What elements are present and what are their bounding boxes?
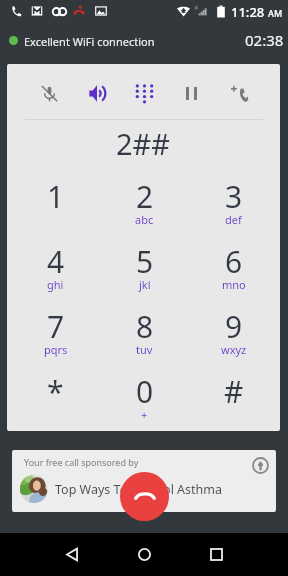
button[interactable]: Dialpad <box>122 76 166 110</box>
button[interactable]: 9 <box>189 306 278 371</box>
staticText: jkl <box>139 277 151 292</box>
button[interactable]: 6 <box>189 241 278 306</box>
staticText: + <box>141 407 148 422</box>
staticText: pqrs <box>44 342 68 357</box>
button[interactable]: Recents <box>194 533 238 576</box>
button[interactable]: 1 <box>11 176 100 241</box>
button[interactable]: 5 <box>100 241 189 306</box>
staticText: 2 <box>136 176 154 217</box>
button[interactable]: Speaker <box>75 76 119 110</box>
staticText: 6 <box>225 241 243 282</box>
staticText: mno <box>222 277 246 292</box>
staticText: 1 <box>47 176 65 217</box>
button[interactable]: 8 <box>100 306 189 371</box>
staticText: abc <box>135 212 154 227</box>
staticText: tuv <box>136 342 153 357</box>
staticText: 4 <box>47 241 65 282</box>
staticText: wxyz <box>221 342 247 357</box>
staticText: * <box>47 371 64 412</box>
staticText: 5 <box>136 241 154 282</box>
staticText: 0 <box>136 371 154 412</box>
button[interactable]: 4 <box>11 241 100 306</box>
button[interactable]: 2 <box>100 176 189 241</box>
button[interactable]: * <box>11 371 100 431</box>
staticText: 11:28 <box>231 3 265 21</box>
staticText: ghi <box>47 277 64 292</box>
staticText: AM <box>268 7 283 19</box>
button[interactable]: # <box>189 371 278 431</box>
staticText: 02:38 <box>245 30 284 50</box>
button[interactable]: 0 <box>100 371 189 431</box>
staticText: 7 <box>47 306 65 347</box>
button[interactable]: Add call <box>217 76 261 110</box>
button[interactable]: Home <box>122 533 166 576</box>
staticText: 8 <box>136 306 154 347</box>
button[interactable]: 7 <box>11 306 100 371</box>
staticText: Top Ways To Control Asthma <box>55 481 223 498</box>
staticText: 2## <box>116 124 171 158</box>
button[interactable]: End call <box>120 472 169 521</box>
staticText: def <box>225 212 242 227</box>
staticText: Excellent WiFi connection <box>24 34 155 49</box>
button[interactable]: Back <box>50 533 94 576</box>
staticText: Your free call sponsored by <box>24 456 139 468</box>
button[interactable]: Mute <box>27 76 71 110</box>
button[interactable]: Hold <box>169 76 213 110</box>
staticText: 3 <box>225 176 243 217</box>
button[interactable]: Your free call sponsored by <box>12 450 276 512</box>
button[interactable]: 3 <box>189 176 278 241</box>
staticText: # <box>224 371 244 412</box>
staticText: 9 <box>225 306 243 347</box>
